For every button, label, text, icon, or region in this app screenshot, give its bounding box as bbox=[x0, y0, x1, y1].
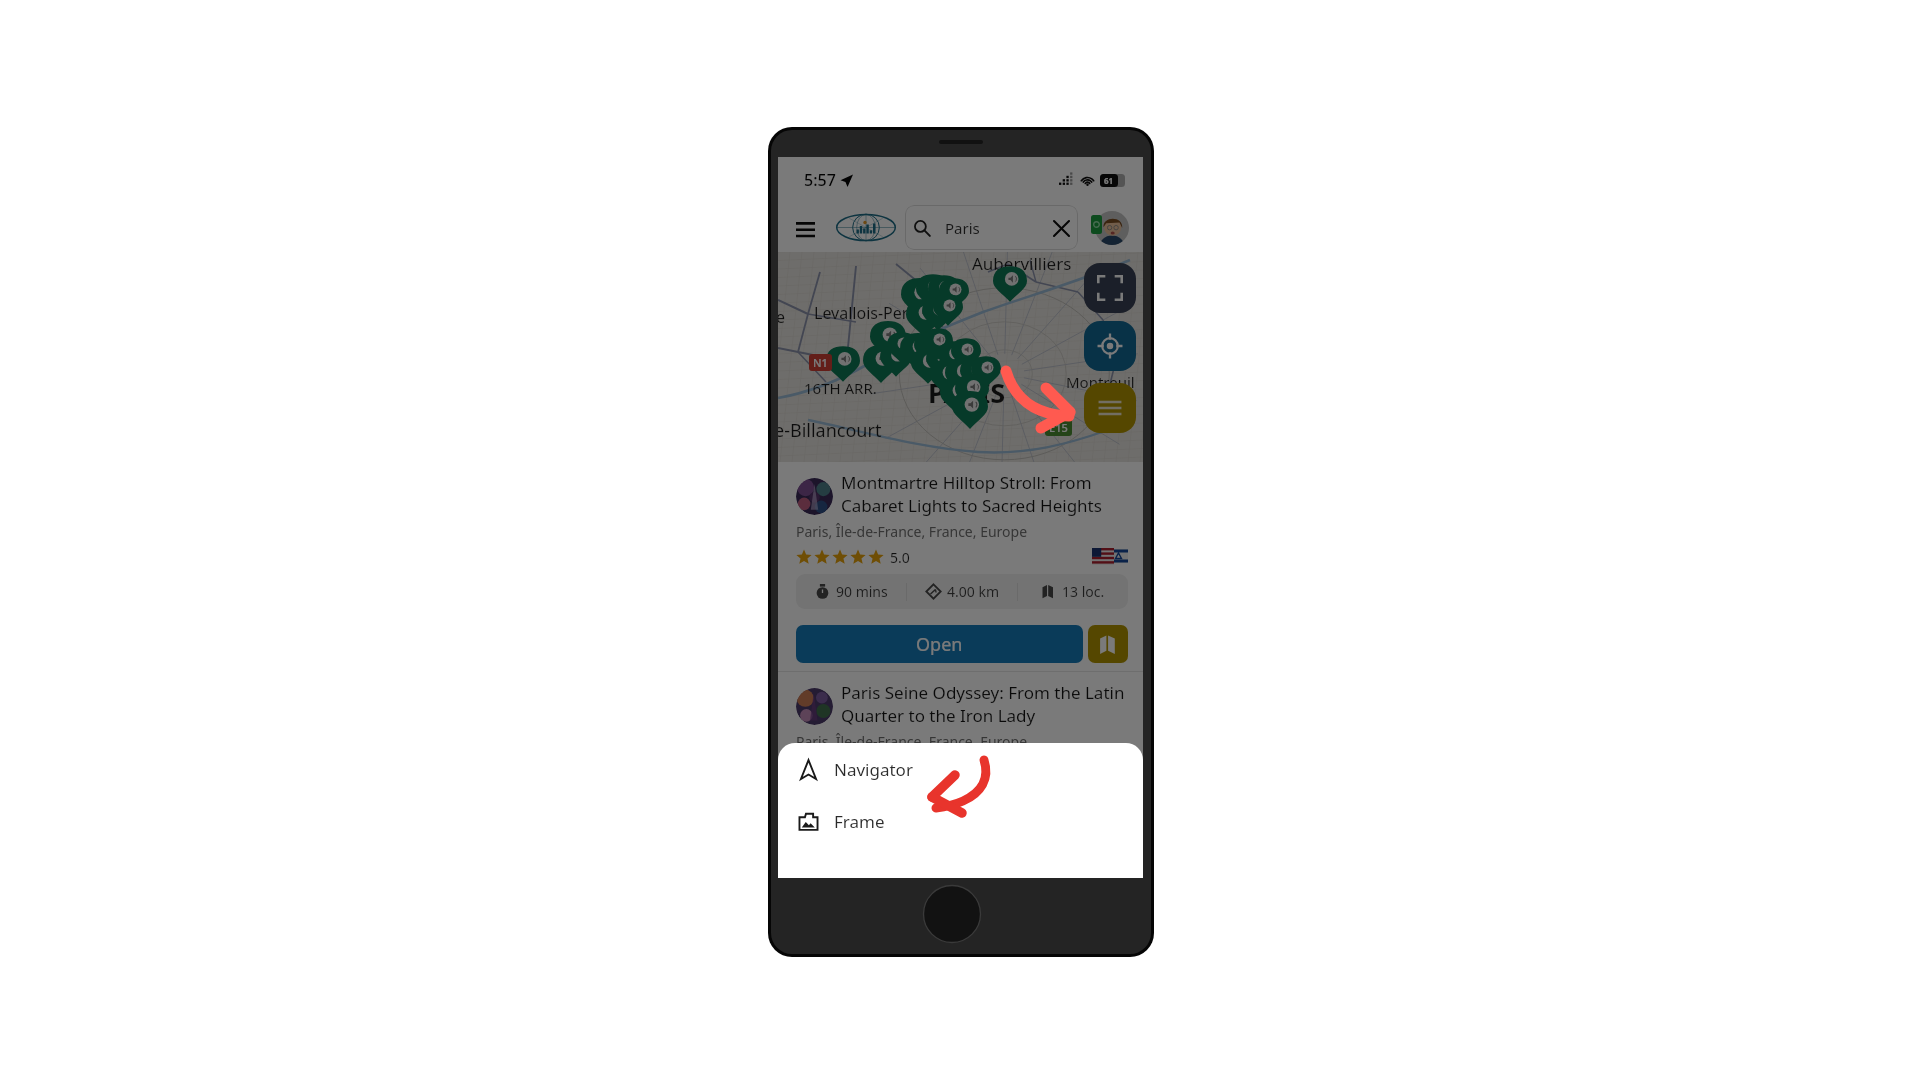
button[interactable]: Show list bbox=[1084, 383, 1136, 433]
staticText: Paris, Île-de-France, France, Europe bbox=[796, 522, 1028, 541]
staticText: 90 mins bbox=[836, 582, 888, 601]
staticText: e-Billancourt bbox=[778, 418, 882, 443]
staticText: 13 loc. bbox=[1062, 582, 1105, 601]
button[interactable]: Paris bbox=[905, 205, 1078, 250]
staticText: e bbox=[778, 306, 786, 328]
staticText: N1 bbox=[813, 355, 828, 370]
staticText: Quarter to the Iron Lady bbox=[841, 704, 1036, 727]
staticText: Aubervilliers bbox=[972, 252, 1072, 275]
staticText: Navigator bbox=[834, 758, 913, 781]
staticText: 5.0 bbox=[890, 548, 910, 567]
button[interactable]: My location bbox=[1084, 321, 1136, 371]
staticText: 5:57 bbox=[804, 169, 836, 191]
staticText: PARIS bbox=[928, 374, 1006, 411]
button[interactable]: App logo bbox=[834, 210, 898, 244]
button[interactable]: Frame bbox=[778, 795, 1143, 847]
staticText: Open bbox=[916, 632, 963, 657]
staticText: Paris, Île-de-France, France, Europe bbox=[796, 732, 1028, 751]
button[interactable]: Menu bbox=[790, 214, 820, 244]
staticText: Paris bbox=[945, 218, 980, 238]
staticText: 61 bbox=[1104, 175, 1114, 186]
button[interactable]: Clear search bbox=[1048, 215, 1074, 241]
staticText: Cabaret Lights to Sacred Heights bbox=[841, 494, 1102, 517]
staticText: Levallois-Perre bbox=[814, 302, 924, 324]
button[interactable]: Open map bbox=[1088, 625, 1128, 663]
staticText: E15 bbox=[1049, 420, 1068, 435]
staticText: 4.00 km bbox=[947, 582, 999, 601]
staticText: 16TH ARR. bbox=[804, 378, 877, 398]
staticText: Montmartre Hilltop Stroll: From bbox=[841, 471, 1092, 494]
button[interactable]: Profile bbox=[1095, 211, 1129, 245]
button[interactable]: Fullscreen bbox=[1084, 263, 1136, 313]
button[interactable]: Open bbox=[796, 625, 1083, 663]
staticText: Paris Seine Odyssey: From the Latin bbox=[841, 681, 1125, 704]
staticText: Montreuil bbox=[1066, 372, 1135, 392]
staticText: Frame bbox=[834, 810, 885, 833]
button[interactable]: Navigator bbox=[778, 743, 1143, 795]
